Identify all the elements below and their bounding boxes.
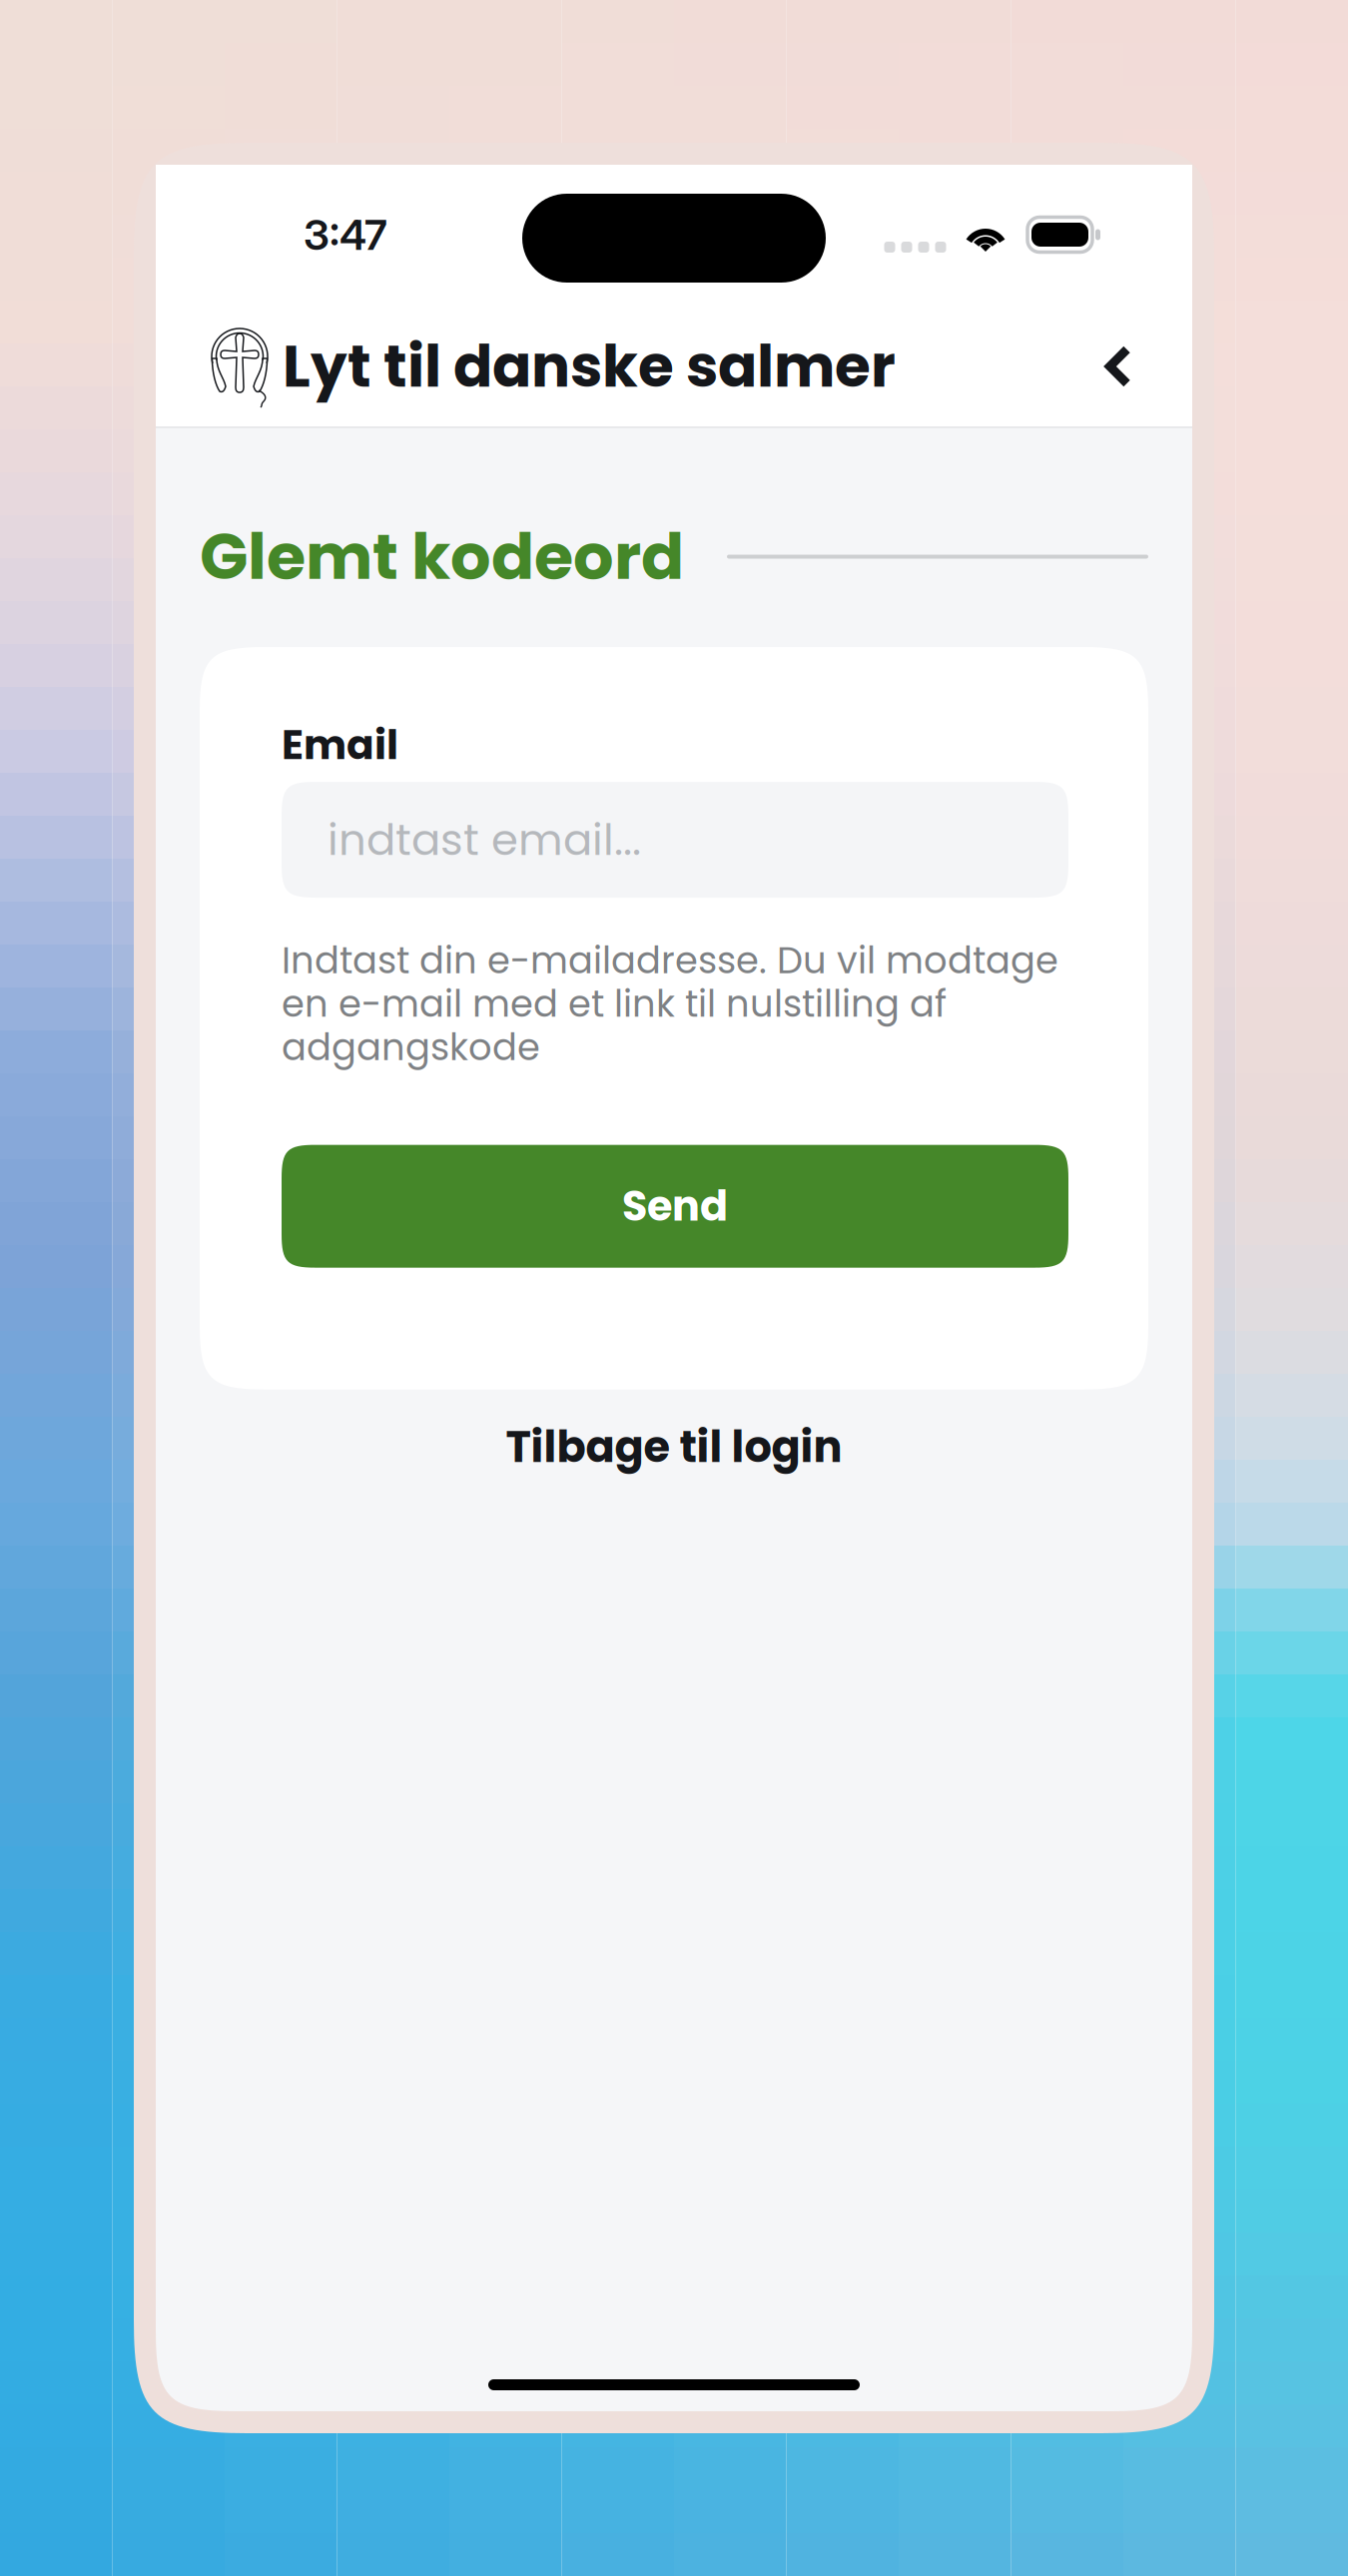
staticText: Glemt kodeord [200, 512, 684, 601]
button[interactable]: Tilbage til login [200, 1399, 1148, 1494]
button[interactable]: Send [282, 1145, 1068, 1268]
button[interactable]: Back [1074, 322, 1162, 410]
staticText: indtast email... [328, 809, 641, 870]
staticText: Tilbage til login [506, 1417, 842, 1477]
staticText: Email [282, 716, 398, 773]
staticText: Send [622, 1177, 728, 1235]
staticText: 3:47 [304, 209, 387, 260]
staticText: Lyt til danske salmer [283, 326, 896, 407]
staticText: Indtast din e-mailadresse. Du vil modtag… [282, 939, 1058, 1069]
